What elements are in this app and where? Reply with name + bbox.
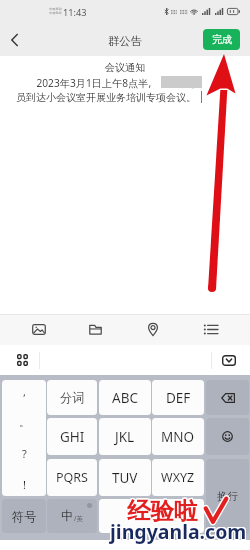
staticText: 分词 xyxy=(60,390,85,405)
staticText: 完成 xyxy=(212,33,232,46)
button[interactable]: Backspace xyxy=(206,380,249,415)
staticText: WXYZ xyxy=(161,469,195,486)
button[interactable]: Emoji xyxy=(206,418,249,455)
staticText: jingyanla.com xyxy=(109,519,246,546)
staticText: PQRS xyxy=(56,469,88,486)
button[interactable]: 换行 xyxy=(206,459,249,534)
staticText: 中 xyxy=(61,508,74,524)
staticText: 员到达小会议室开展业务培训专项会议。 xyxy=(16,91,196,104)
staticText: 经验啦 xyxy=(128,496,199,526)
staticText: 经验啦 xyxy=(127,497,198,527)
staticText: jingyanla.com xyxy=(110,517,247,544)
staticText: ? xyxy=(22,446,27,461)
staticText: 会议通知 xyxy=(0,61,250,74)
button[interactable]: , xyxy=(2,380,46,496)
button[interactable]: Hide keyboard xyxy=(218,350,240,370)
button[interactable]: JKL xyxy=(99,418,151,455)
button[interactable]: Back xyxy=(2,27,26,53)
staticText: 中国电信 xyxy=(49,11,62,15)
button[interactable]: MNO xyxy=(152,418,204,455)
button[interactable]: 分词 xyxy=(47,380,97,415)
staticText: GHI xyxy=(60,428,85,446)
button[interactable]: WXYZ xyxy=(152,459,204,496)
staticText: 符号 xyxy=(12,509,37,524)
staticText: 经验啦 xyxy=(128,495,199,525)
staticText: 经验啦 xyxy=(128,497,199,527)
staticText: DEF xyxy=(166,389,191,407)
staticText: jingyanla.com xyxy=(110,518,247,545)
staticText: 经验啦 xyxy=(126,497,197,527)
button[interactable]: TUV xyxy=(99,459,151,496)
staticText: 2023年3月1日上午8点半, 人 xyxy=(16,76,203,90)
button[interactable]: 符号 xyxy=(2,499,46,533)
button[interactable]: ABC xyxy=(99,380,151,415)
staticText: MNO xyxy=(161,428,195,446)
staticText: jingyanla.com xyxy=(110,519,247,546)
button[interactable]: List xyxy=(196,314,226,345)
button[interactable]: 中 xyxy=(47,499,97,533)
button[interactable]: Folder xyxy=(81,314,110,345)
staticText: 经验啦 xyxy=(126,496,197,526)
button[interactable]: Location xyxy=(140,314,166,345)
button[interactable]: Keyboard layouts xyxy=(10,350,34,370)
staticText: 经验啦 xyxy=(126,495,197,525)
button[interactable]: Space xyxy=(99,499,204,533)
button[interactable]: PQRS xyxy=(47,459,97,496)
staticText: 11:43 xyxy=(63,6,87,19)
staticText: 换行 xyxy=(217,490,238,503)
staticText: JKL xyxy=(115,428,135,446)
staticText: /英 xyxy=(74,514,83,523)
staticText: , xyxy=(23,384,26,399)
button[interactable]: 完成 xyxy=(203,29,240,50)
staticText: jingyanla.com xyxy=(109,518,246,545)
staticText: jingyanla.com xyxy=(109,517,246,544)
staticText: ! xyxy=(23,477,26,492)
button[interactable]: DEF xyxy=(152,380,204,415)
staticText: 经验啦 xyxy=(127,495,198,525)
button[interactable]: GHI xyxy=(47,418,97,455)
staticText: ABC xyxy=(112,389,138,407)
staticText: 中国移动 xyxy=(49,7,62,11)
staticText: jingyanla.com xyxy=(111,518,248,545)
staticText: jingyanla.com xyxy=(111,519,248,546)
button[interactable]: Image xyxy=(24,314,54,345)
staticText: TUV xyxy=(112,469,138,487)
staticText: 群公告 xyxy=(0,34,250,48)
staticText: 经验啦 xyxy=(127,496,198,526)
staticText: jingyanla.com xyxy=(111,517,248,544)
staticText: 。 xyxy=(19,415,30,429)
